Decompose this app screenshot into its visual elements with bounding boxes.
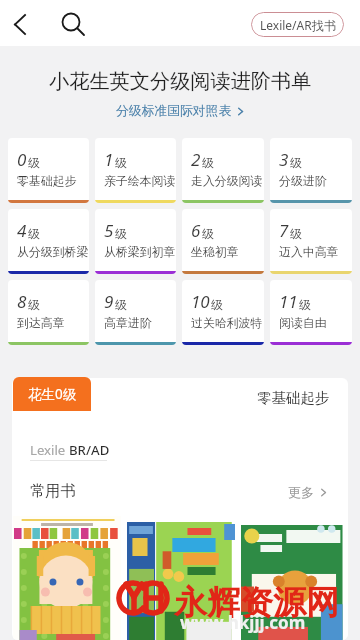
staticText: 级 [202,155,214,170]
button[interactable]: 8 [8,280,89,345]
staticText: 3 [279,148,289,171]
staticText: 级 [115,297,127,312]
staticText: www.hkjjj.com [180,611,306,634]
staticText: 零基础起步 [257,389,330,407]
button[interactable]: 10 [182,280,264,345]
button[interactable]: 3 [270,138,352,203]
staticText: 级 [28,226,40,241]
staticText: 亲子绘本阅读 [104,174,176,189]
button[interactable] [241,516,348,640]
staticText: 级 [299,297,311,312]
staticText: 级 [211,297,223,312]
staticText: 到达高章 [17,316,65,331]
staticText: 迈入中高章 [279,245,339,260]
button[interactable]: 2 [182,138,264,203]
button[interactable] [13,516,121,640]
staticText: BR/AD [69,441,110,459]
staticText: 从分级到桥梁 [17,245,89,260]
button[interactable]: Lexile/AR找书 [251,12,344,37]
staticText: 0 [17,148,27,171]
button[interactable]: 4 [8,209,89,274]
staticText: 级 [290,155,302,170]
button[interactable]: 1 [95,138,176,203]
button[interactable] [127,516,235,640]
staticText: 级 [290,226,302,241]
button[interactable]: Search [50,2,92,44]
staticText: 永辉资源网 [174,582,339,624]
staticText: 小花生英文分级阅读进阶书单 [49,69,312,94]
staticText: Lexile [30,441,69,459]
button[interactable]: 5 [95,209,176,274]
staticText: 5 [104,219,114,242]
staticText: 高章进阶 [104,316,152,331]
staticText: 阅读自由 [279,316,327,331]
staticText: 2 [191,148,201,171]
staticText: 从桥梁到初章 [104,245,176,260]
button[interactable]: 6 [182,209,264,274]
button[interactable]: 0 [8,138,89,203]
staticText: 11 [279,290,298,313]
staticText: 6 [191,219,201,242]
staticText: Lexile/AR找书 [260,17,336,33]
staticText: 8 [17,290,27,313]
staticText: 级 [28,155,40,170]
staticText: 1 [104,148,114,171]
staticText: 分级标准国际对照表 [116,103,232,119]
staticText: 9 [104,290,114,313]
staticText: 4 [17,219,27,242]
button[interactable]: 7 [270,209,352,274]
staticText: 级 [202,226,214,241]
staticText: 常用书 [30,481,76,500]
button[interactable]: 11 [270,280,352,345]
button[interactable]: 花生0级 [13,377,91,411]
staticText: 过关哈利波特 [191,316,263,331]
staticText: 更多 [288,484,314,500]
button[interactable]: Back [0,2,42,44]
button[interactable]: 分级标准国际对照表 [116,103,245,119]
staticText: 7 [279,219,289,242]
staticText: 级 [28,297,40,312]
staticText: 级 [115,226,127,241]
staticText: 坐稳初章 [191,245,239,260]
staticText: 分级进阶 [279,174,327,189]
button[interactable]: 更多 [288,484,328,500]
staticText: 走入分级阅读 [191,174,263,189]
staticText: 花生0级 [28,385,77,403]
staticText: 零基础起步 [17,174,77,189]
staticText: 级 [115,155,127,170]
button[interactable]: 9 [95,280,176,345]
staticText: 10 [191,290,210,313]
